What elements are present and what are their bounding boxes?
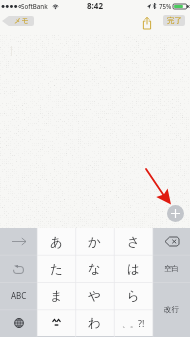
button[interactable]: Add bbox=[167, 205, 184, 222]
staticText: ! bbox=[142, 317, 145, 329]
staticText: や bbox=[88, 288, 101, 304]
staticText: SoftBank bbox=[21, 2, 48, 10]
staticText: か bbox=[88, 234, 101, 250]
staticText: さ bbox=[127, 234, 140, 250]
staticText: メモ bbox=[14, 16, 29, 25]
staticText: 、。 bbox=[122, 319, 138, 329]
button[interactable]: や bbox=[75, 282, 114, 309]
staticText: た bbox=[50, 261, 63, 277]
button[interactable]: 改行 bbox=[153, 282, 190, 337]
staticText: ま bbox=[50, 288, 63, 304]
button[interactable]: な bbox=[75, 255, 114, 282]
button[interactable]: ま bbox=[37, 282, 75, 309]
staticText: ABC bbox=[11, 290, 27, 301]
staticText: 空白 bbox=[164, 264, 179, 273]
button[interactable]: Share bbox=[140, 14, 154, 31]
button[interactable]: た bbox=[37, 255, 75, 282]
button[interactable]: ら bbox=[114, 282, 153, 309]
staticText: な bbox=[88, 261, 101, 277]
button[interactable]: Undo bbox=[0, 255, 37, 282]
staticText: 75% bbox=[159, 2, 172, 10]
button[interactable]: Delete bbox=[153, 228, 190, 255]
button[interactable]: か bbox=[75, 228, 114, 255]
staticText: 8:42 bbox=[87, 0, 103, 11]
button[interactable]: メモ bbox=[2, 16, 34, 26]
button[interactable]: 完了 bbox=[163, 15, 185, 26]
staticText: 完了 bbox=[167, 16, 182, 25]
staticText: ら bbox=[127, 288, 140, 304]
button[interactable]: わ bbox=[75, 309, 114, 336]
button[interactable]: Next bbox=[0, 228, 37, 255]
button[interactable]: Punctuation bbox=[114, 309, 153, 336]
staticText: は bbox=[127, 261, 140, 277]
button[interactable]: Small kana / dakuten bbox=[37, 309, 75, 336]
button[interactable]: は bbox=[114, 255, 153, 282]
button[interactable]: ABC bbox=[0, 282, 37, 309]
staticText: ? bbox=[138, 317, 142, 329]
button[interactable]: Switch keyboard bbox=[0, 309, 37, 336]
button[interactable]: さ bbox=[114, 228, 153, 255]
button[interactable]: 空白 bbox=[153, 255, 190, 282]
button[interactable]: あ bbox=[37, 228, 75, 255]
staticText: あ bbox=[50, 234, 63, 250]
staticText: 改行 bbox=[164, 305, 179, 314]
staticText: わ bbox=[88, 315, 101, 331]
